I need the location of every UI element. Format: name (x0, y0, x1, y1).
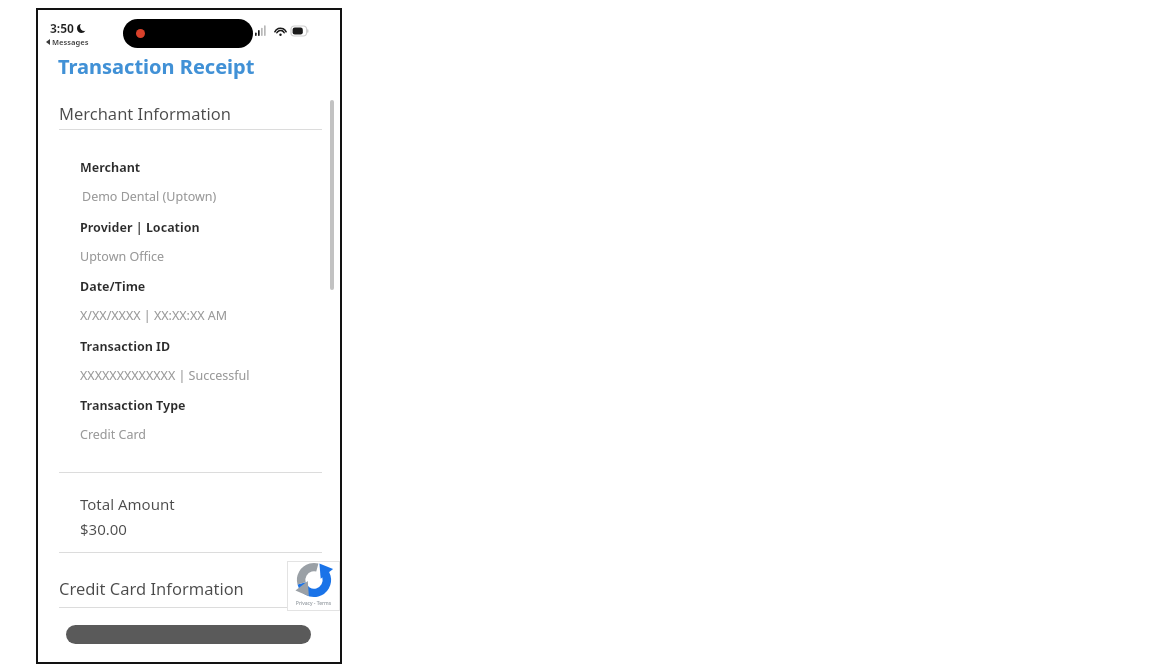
button[interactable]: Home (66, 625, 311, 644)
staticText: Credit Card (80, 426, 147, 443)
staticText: Transaction Type (80, 397, 186, 414)
staticText: Merchant Information (59, 102, 231, 124)
staticText: XXXXXXXXXXXXX | Successful (80, 367, 250, 384)
staticText: Provider | Location (80, 219, 200, 236)
staticText: 3:50 (50, 20, 74, 36)
staticText: Merchant (80, 159, 141, 176)
button[interactable]: Transaction Receipt (58, 53, 255, 80)
staticText: X/XX/XXXX | XX:XX:XX AM (80, 307, 228, 324)
staticText: Credit Card Information (59, 577, 244, 599)
staticText: $30.00 (80, 519, 127, 539)
staticText: Transaction Receipt (58, 53, 255, 80)
staticText: Messages (52, 37, 89, 47)
staticText: Privacy - Terms (287, 600, 340, 607)
staticText: Uptown Office (80, 248, 165, 265)
button[interactable]: reCAPTCHA Privacy and Terms (287, 561, 340, 611)
staticText: Total Amount (80, 494, 175, 514)
staticText: Transaction ID (80, 338, 171, 355)
staticText: Date/Time (80, 278, 146, 295)
staticText: Demo Dental (Uptown) (82, 188, 217, 205)
